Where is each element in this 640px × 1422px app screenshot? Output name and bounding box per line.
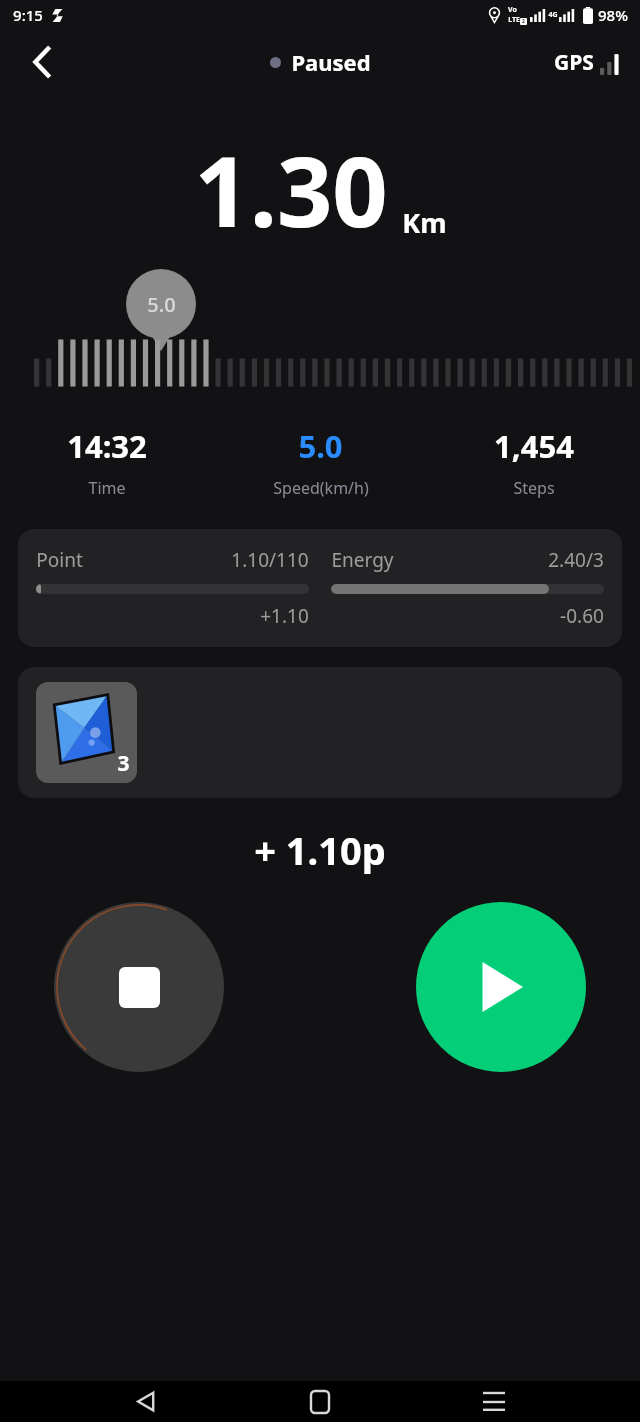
staticText: GPS — [554, 48, 594, 77]
button[interactable]: Gem item, quantity 3 — [36, 682, 137, 783]
staticText: 5.0 — [147, 291, 176, 318]
button[interactable]: Gem item, quantity 3 — [18, 667, 622, 798]
staticText: 9:15 — [13, 5, 43, 25]
staticText: 98% — [598, 5, 628, 25]
staticText: + 1.10p — [254, 824, 386, 876]
button[interactable]: GPS — [550, 42, 626, 83]
button[interactable]: 5.0 — [214, 425, 427, 499]
staticText: Energy — [331, 547, 394, 573]
button[interactable]: Point — [18, 529, 622, 647]
staticText: Vo — [508, 5, 517, 15]
button[interactable]: Back — [18, 38, 66, 86]
staticText: Steps — [513, 477, 555, 499]
staticText: 2 — [522, 18, 525, 25]
staticText: 5.0 — [298, 425, 343, 467]
staticText: -0.60 — [560, 603, 604, 629]
staticText: Time — [88, 477, 126, 499]
staticText: Paused — [291, 47, 371, 77]
button[interactable]: Stop — [54, 902, 224, 1072]
staticText: 14:32 — [67, 425, 147, 467]
button[interactable]: 14:32 — [0, 425, 214, 499]
button[interactable]: Recent apps — [466, 1381, 522, 1422]
staticText: 2.40/3 — [548, 547, 604, 573]
staticText: 1,454 — [494, 425, 574, 467]
staticText: Km — [402, 204, 447, 241]
staticText: 1.10/110 — [231, 547, 309, 573]
staticText: 3 — [117, 749, 130, 778]
button[interactable]: Home — [292, 1381, 348, 1422]
staticText: Speed(km/h) — [273, 477, 369, 499]
button[interactable]: Back — [118, 1381, 174, 1422]
staticText: 4G — [548, 10, 558, 20]
staticText: Point — [36, 547, 83, 573]
button[interactable]: Resume — [416, 902, 586, 1072]
staticText: LTE — [508, 15, 520, 25]
button[interactable]: 1,454 — [427, 425, 640, 499]
staticText: +1.10 — [260, 603, 309, 629]
staticText: 1.30 — [194, 123, 388, 255]
